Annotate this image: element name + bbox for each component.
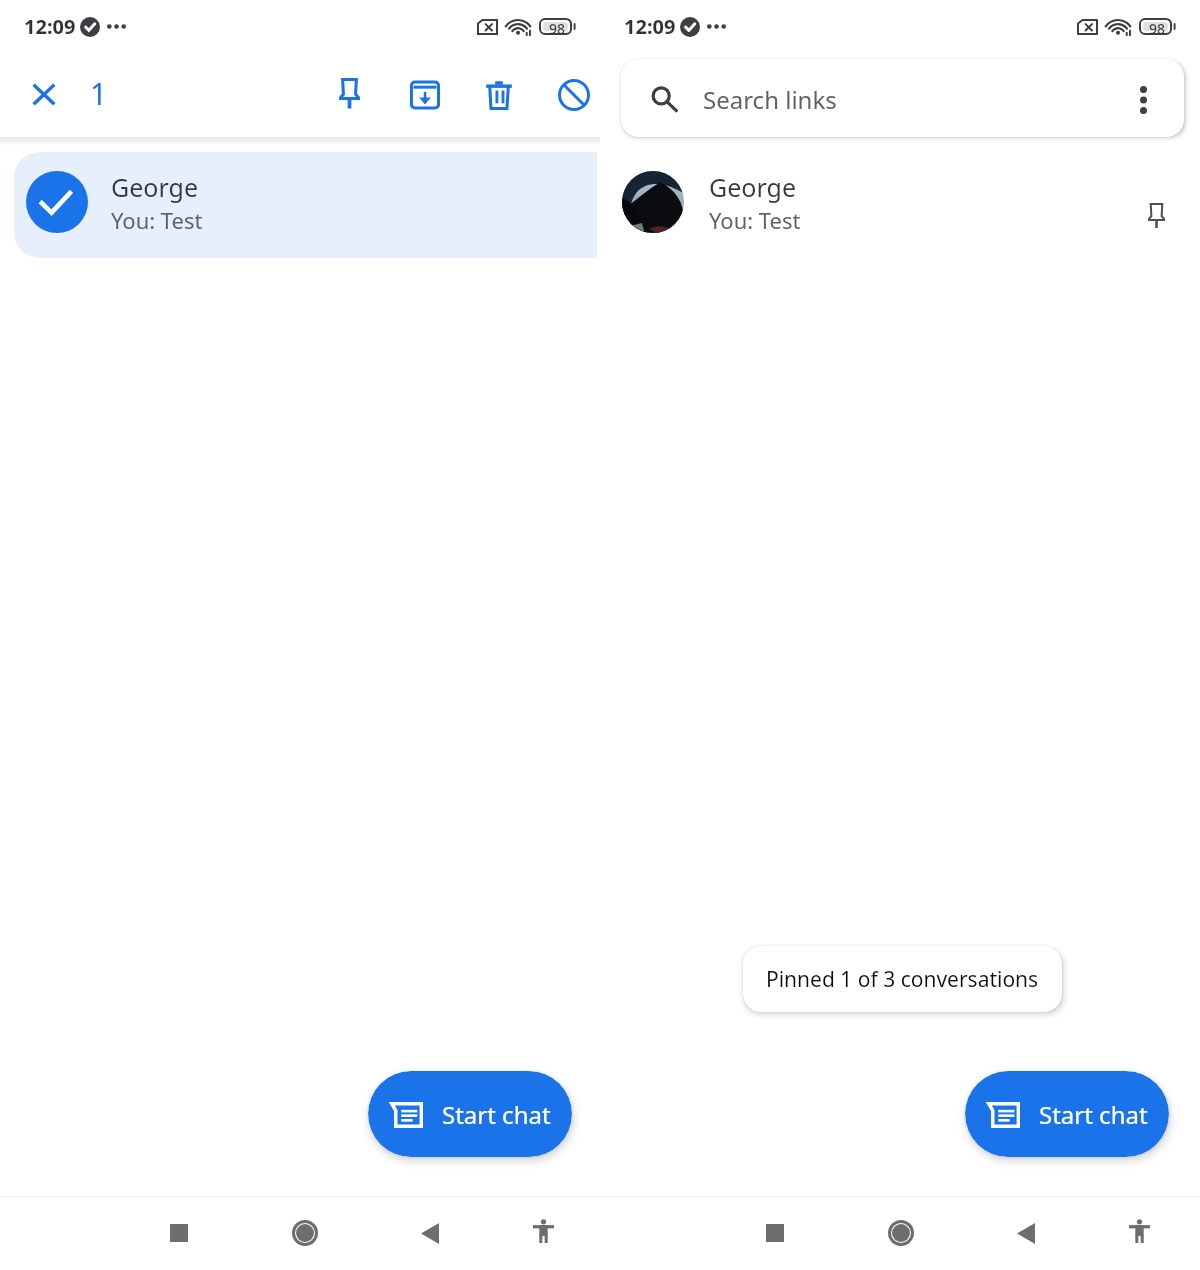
staticText: George (111, 170, 198, 204)
staticText: 12:09 (24, 13, 76, 40)
staticText: George (709, 170, 796, 204)
button[interactable]: Pin (321, 66, 377, 122)
staticText: 1 (90, 73, 108, 114)
staticText: Search links (703, 83, 837, 116)
staticText: 12:09 (624, 13, 676, 40)
button[interactable]: Accessibility (1109, 1201, 1169, 1261)
staticText: You: Test (709, 205, 801, 235)
button[interactable]: Home (275, 1203, 335, 1263)
staticText: Start chat (442, 1098, 551, 1131)
staticText: 98 (549, 19, 566, 36)
button[interactable]: More options (1115, 72, 1171, 128)
button[interactable]: Archive (397, 67, 453, 123)
button[interactable]: Delete (471, 67, 527, 123)
button[interactable]: Back (996, 1203, 1056, 1263)
button[interactable]: 1 (75, 65, 123, 121)
button[interactable]: Recents (745, 1203, 805, 1263)
button[interactable]: Block (546, 67, 602, 123)
button[interactable]: George (14, 152, 597, 258)
button[interactable]: Accessibility (513, 1201, 573, 1261)
button[interactable]: Recents (149, 1203, 209, 1263)
button[interactable]: Home (871, 1203, 931, 1263)
staticText: Start chat (1039, 1098, 1148, 1131)
button[interactable]: Close (15, 66, 72, 123)
button[interactable]: Search links (621, 59, 1184, 137)
staticText: You: Test (111, 205, 203, 235)
staticText: Pinned 1 of 3 conversations (766, 965, 1039, 994)
button[interactable]: Pinned (1128, 188, 1184, 244)
button[interactable]: George (600, 152, 1200, 258)
button[interactable]: Start chat (965, 1071, 1169, 1157)
staticText: 98 (1149, 19, 1166, 36)
button[interactable]: Start chat (368, 1071, 572, 1157)
button[interactable]: Back (400, 1203, 460, 1263)
